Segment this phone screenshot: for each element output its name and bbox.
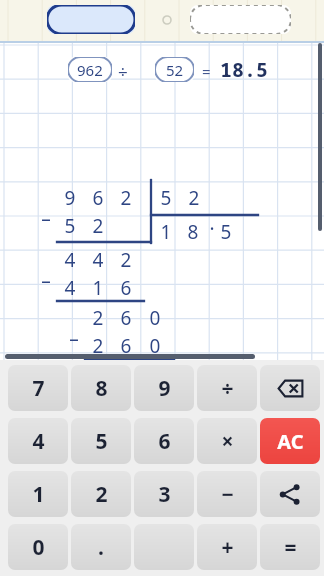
- button[interactable]: .: [71, 524, 131, 570]
- staticText: 6: [88, 185, 108, 211]
- button[interactable]: AC: [260, 418, 320, 464]
- staticText: 8: [183, 219, 203, 245]
- staticText: –: [64, 326, 84, 352]
- button[interactable]: 6: [134, 418, 194, 464]
- staticText: =: [202, 61, 211, 81]
- button[interactable]: 7: [8, 365, 68, 411]
- staticText: 3: [158, 480, 171, 509]
- staticText: 7: [32, 374, 45, 403]
- button[interactable]: [47, 5, 135, 34]
- staticText: –: [36, 268, 56, 294]
- button[interactable]: =: [260, 524, 320, 570]
- button[interactable]: 2: [71, 471, 131, 517]
- staticText: 18.5: [220, 56, 268, 83]
- staticText: –: [36, 206, 56, 232]
- staticText: 5: [95, 427, 108, 456]
- staticText: 6: [116, 275, 136, 301]
- staticText: AC: [277, 428, 304, 455]
- staticText: 1: [88, 275, 108, 301]
- button[interactable]: 8: [71, 365, 131, 411]
- staticText: 0: [145, 363, 165, 389]
- staticText: 2: [184, 185, 204, 211]
- button[interactable]: 4: [8, 418, 68, 464]
- staticText: 2: [95, 480, 108, 509]
- staticText: 9: [60, 185, 80, 211]
- button[interactable]: 3: [134, 471, 194, 517]
- staticText: 8: [95, 374, 108, 403]
- staticText: 5: [216, 219, 236, 245]
- button[interactable]: +: [197, 524, 257, 570]
- button[interactable]: ÷: [197, 365, 257, 411]
- button[interactable]: 0: [8, 524, 68, 570]
- staticText: ÷: [118, 60, 128, 83]
- staticText: ÷: [221, 374, 234, 403]
- staticText: 2: [116, 185, 136, 211]
- staticText: 962: [77, 60, 103, 80]
- staticText: 4: [60, 247, 80, 273]
- other: Page indicator: [162, 15, 172, 25]
- staticText: 4: [32, 427, 45, 456]
- staticText: 4: [88, 247, 108, 273]
- button[interactable]: 962: [68, 57, 112, 82]
- staticText: =: [284, 533, 297, 562]
- staticText: 9: [158, 374, 171, 403]
- staticText: 6: [158, 427, 171, 456]
- staticText: 52: [166, 60, 184, 80]
- staticText: 5: [156, 185, 176, 211]
- button[interactable]: 5: [71, 418, 131, 464]
- staticText: .: [98, 533, 104, 562]
- button[interactable]: Backspace: [260, 365, 320, 411]
- staticText: 4: [60, 275, 80, 301]
- staticText: +: [221, 533, 234, 562]
- button[interactable]: 1: [8, 471, 68, 517]
- staticText: 2: [88, 305, 108, 331]
- staticText: 0: [145, 305, 165, 331]
- staticText: 5: [60, 213, 80, 239]
- staticText: 6: [116, 333, 136, 359]
- staticText: 1: [156, 219, 176, 245]
- button[interactable]: 9: [134, 365, 194, 411]
- staticText: 6: [116, 305, 136, 331]
- staticText: 2: [88, 213, 108, 239]
- button[interactable]: ×: [197, 418, 257, 464]
- staticText: ·: [202, 216, 222, 242]
- button[interactable]: 52: [155, 57, 194, 82]
- staticText: 0: [32, 533, 45, 562]
- staticText: ×: [221, 427, 234, 456]
- button[interactable]: Add page: [190, 5, 291, 34]
- staticText: 0: [145, 333, 165, 359]
- staticText: −: [221, 480, 234, 509]
- button[interactable]: Share: [260, 471, 320, 517]
- staticText: 1: [32, 480, 45, 509]
- staticText: 2: [116, 247, 136, 273]
- staticText: 2: [88, 333, 108, 359]
- button[interactable]: −: [197, 471, 257, 517]
